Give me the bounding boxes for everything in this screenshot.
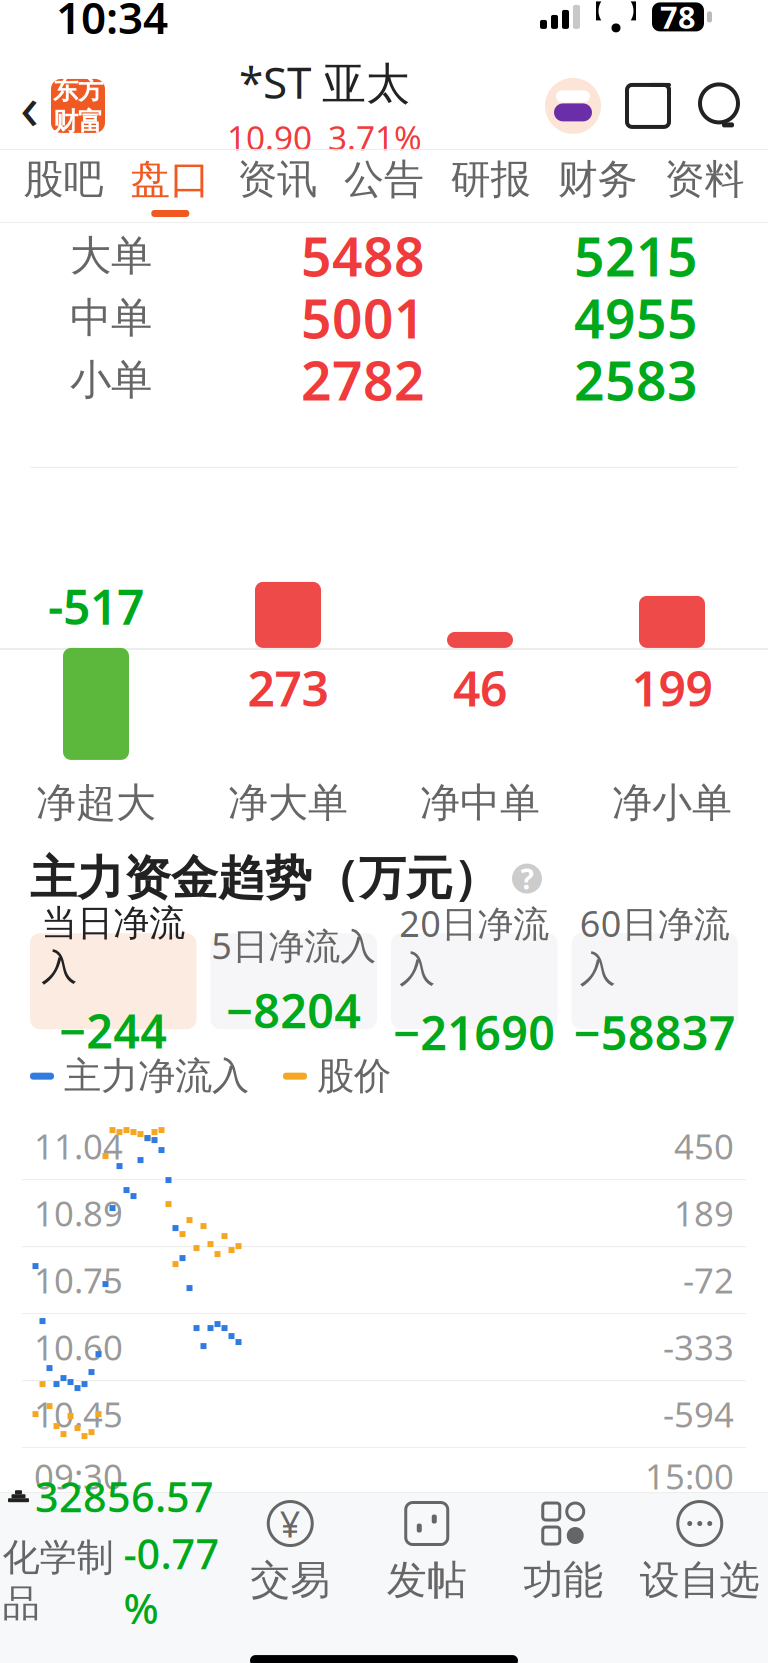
button[interactable]: 财务 bbox=[544, 150, 651, 222]
staticText: 78 bbox=[660, 0, 696, 37]
staticText: −21690 bbox=[393, 1001, 555, 1063]
staticText: 资料 bbox=[665, 155, 745, 204]
button[interactable]: 化学制品板块 bbox=[0, 1496, 222, 1608]
staticText: 发帖 bbox=[387, 1555, 467, 1605]
staticText: 15:00 bbox=[645, 1453, 734, 1499]
staticText: 净超大 bbox=[36, 778, 156, 827]
staticText: 5日净流入 bbox=[211, 921, 376, 969]
staticText: 10:34 bbox=[56, 0, 168, 46]
staticText: 09:30 bbox=[34, 1453, 123, 1499]
button[interactable]: 20日净流入 bbox=[391, 933, 557, 1029]
staticText: 10.75 bbox=[34, 1257, 123, 1303]
staticText: 10.60 bbox=[34, 1324, 123, 1370]
button[interactable]: 研报 bbox=[437, 150, 544, 222]
button[interactable]: 设自选 bbox=[631, 1496, 768, 1608]
staticText: ¥ bbox=[280, 1500, 301, 1547]
staticText: −244 bbox=[59, 999, 167, 1061]
button[interactable]: 资讯 bbox=[224, 150, 331, 222]
button[interactable]: 说明 bbox=[512, 864, 542, 894]
staticText: 189 bbox=[674, 1190, 734, 1236]
button[interactable]: 返回 bbox=[0, 63, 105, 149]
staticText: 450 bbox=[674, 1123, 734, 1169]
staticText: ? bbox=[520, 860, 533, 897]
staticText: 设自选 bbox=[640, 1555, 760, 1605]
staticText: 32856.57 bbox=[35, 1469, 214, 1524]
staticText: -333 bbox=[663, 1324, 734, 1370]
button[interactable]: 盘口 bbox=[117, 150, 224, 222]
staticText: 功能 bbox=[523, 1555, 603, 1605]
staticText: 净中单 bbox=[420, 778, 540, 827]
staticText: 60日净流入 bbox=[580, 899, 730, 991]
button[interactable]: 60日净流入 bbox=[571, 933, 738, 1029]
button[interactable]: ¥ bbox=[222, 1496, 358, 1608]
staticText: 4955 bbox=[574, 282, 698, 353]
staticText: -0.77% bbox=[123, 1526, 219, 1635]
staticText: ‹ bbox=[20, 65, 39, 147]
staticText: 199 bbox=[631, 656, 712, 720]
staticText: -594 bbox=[663, 1391, 734, 1437]
staticText: 盘口 bbox=[130, 155, 210, 204]
staticText: 5215 bbox=[574, 220, 698, 291]
staticText: 财务 bbox=[558, 155, 638, 204]
staticText: 股价 bbox=[317, 1053, 391, 1099]
staticText: 财富 bbox=[53, 106, 103, 137]
button[interactable]: 股吧 bbox=[10, 150, 117, 222]
staticText: 中单 bbox=[70, 292, 152, 343]
button[interactable]: 当日净流入 bbox=[30, 933, 196, 1029]
button[interactable]: 5日净流入 bbox=[210, 933, 377, 1029]
staticText: 2583 bbox=[574, 344, 698, 415]
staticText: 20日净流入 bbox=[399, 899, 549, 991]
staticText: 化学制品 bbox=[2, 1535, 113, 1626]
staticText: 11.04 bbox=[34, 1123, 123, 1169]
button[interactable]: 搜索 bbox=[694, 80, 744, 132]
button[interactable]: AI助手 bbox=[544, 77, 602, 135]
staticText: 46 bbox=[453, 656, 507, 720]
staticText: *ST 亚太 bbox=[239, 52, 410, 111]
staticText: 主力资金趋势（万元） bbox=[30, 850, 500, 907]
staticText: 3.71% bbox=[328, 115, 422, 159]
staticText: −8204 bbox=[226, 979, 361, 1041]
staticText: 东方 bbox=[53, 75, 103, 106]
staticText: 交易 bbox=[250, 1555, 330, 1605]
staticText: 10.89 bbox=[34, 1190, 123, 1236]
button[interactable]: 资料 bbox=[651, 150, 758, 222]
staticText: 公告 bbox=[344, 155, 424, 204]
staticText: 股吧 bbox=[23, 155, 103, 204]
button[interactable]: 分享 bbox=[622, 80, 674, 132]
staticText: 2782 bbox=[301, 344, 425, 415]
staticText: 研报 bbox=[451, 155, 531, 204]
button[interactable]: 功能 bbox=[495, 1496, 631, 1608]
staticText: 10.45 bbox=[34, 1391, 123, 1437]
staticText: 净小单 bbox=[612, 778, 732, 827]
staticText: 资讯 bbox=[237, 155, 317, 204]
button[interactable]: 公告 bbox=[331, 150, 437, 222]
staticText: 10.90 bbox=[227, 115, 312, 159]
staticText: 273 bbox=[247, 656, 328, 720]
button[interactable]: 发帖 bbox=[358, 1496, 495, 1608]
staticText: 净大单 bbox=[228, 778, 348, 827]
staticText: 大单 bbox=[70, 230, 152, 281]
staticText: 5001 bbox=[301, 282, 425, 353]
staticText: -517 bbox=[48, 574, 144, 638]
staticText: 5488 bbox=[301, 220, 425, 291]
staticText: 主力净流入 bbox=[64, 1053, 249, 1099]
staticText: 当日净流入 bbox=[41, 901, 185, 989]
staticText: −58837 bbox=[574, 1001, 736, 1063]
staticText: -72 bbox=[683, 1257, 734, 1303]
staticText: 小单 bbox=[70, 354, 152, 405]
